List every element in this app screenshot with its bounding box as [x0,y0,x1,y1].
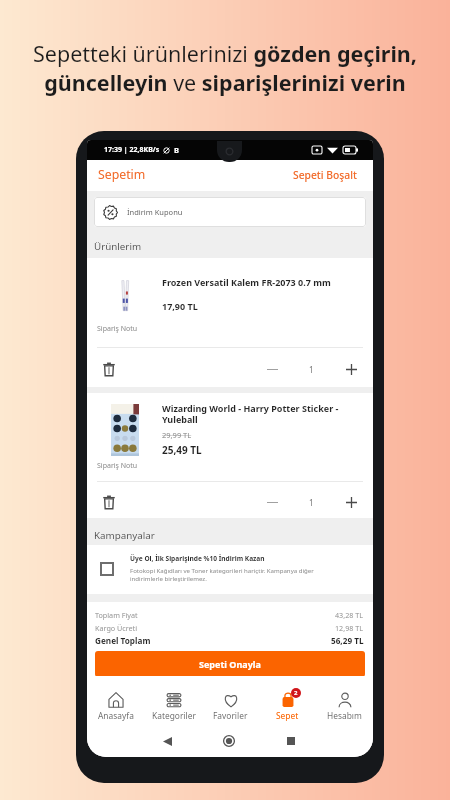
staticText: 1 [309,364,314,375]
staticText: güncelleyin ve siparişlerinizi verin [44,68,406,97]
staticText: Üye Ol, İlk Siparişinde %10 İndirim Kaza… [130,554,265,563]
staticText: Wizarding World - Harry Potter Sticker -… [162,402,339,426]
staticText: 56,29 TL [331,635,364,646]
button[interactable]: Sepeti Boşalt [293,168,373,182]
button[interactable]: Geri [156,730,178,752]
staticText: B [174,145,179,155]
staticText: Hesabım [327,710,362,721]
button[interactable]: Kampanyayı seç [100,562,114,576]
staticText: Fotokopi Kağıdları ve Toner kategorileri… [130,566,314,582]
button[interactable]: Arttır [340,491,362,513]
button[interactable]: 2 [259,676,316,725]
staticText: Ürünlerim [94,240,142,253]
button[interactable]: Kategoriler [145,676,202,725]
button[interactable]: Ana ekran [218,730,240,752]
button[interactable]: Sil [98,491,120,513]
button[interactable]: İndirim Kuponu [94,197,366,227]
staticText: Kargo Ücreti [95,623,138,633]
staticText: İndirim Kuponu [127,207,183,217]
staticText: 25,49 TL [162,443,202,457]
staticText: Sipariş Notu [97,461,138,471]
staticText: 17:39 | 22,8KB/s [104,145,160,155]
button[interactable]: Arttır [340,358,362,380]
staticText: Sepeti Onayla [199,658,261,670]
staticText: Sepetteki ürünlerinizi gözden geçirin, [33,39,417,68]
button[interactable]: Sepeti Onayla [95,651,365,677]
button[interactable]: Sil [98,358,120,380]
button[interactable]: Favoriler [202,676,259,725]
staticText: 43,28 TL [335,610,364,620]
staticText: Kategoriler [152,710,196,721]
staticText: 1 [309,497,314,508]
staticText: Genel Toplam [95,635,151,646]
staticText: Kampanyalar [94,529,155,542]
staticText: Sepet [276,710,299,721]
staticText: Anasayfa [98,710,134,721]
button[interactable]: Hesabım [316,676,373,725]
button[interactable]: Sepetim [87,166,146,183]
staticText: Sipariş Notu [97,324,138,334]
staticText: 12,98 TL [335,623,364,633]
staticText: Frozen Versatil Kalem FR-2073 0.7 mm [162,276,331,288]
button[interactable]: Azalt [261,358,283,380]
staticText: Toplam Fiyat [95,610,138,620]
button[interactable]: Son uygulamalar [280,730,302,752]
staticText: Favoriler [213,710,248,721]
button[interactable]: Azalt [261,491,283,513]
staticText: 2 [294,689,298,697]
staticText: 29,99 TL [162,430,192,440]
button[interactable]: Anasayfa [87,676,145,725]
staticText: 17,90 TL [162,300,198,312]
